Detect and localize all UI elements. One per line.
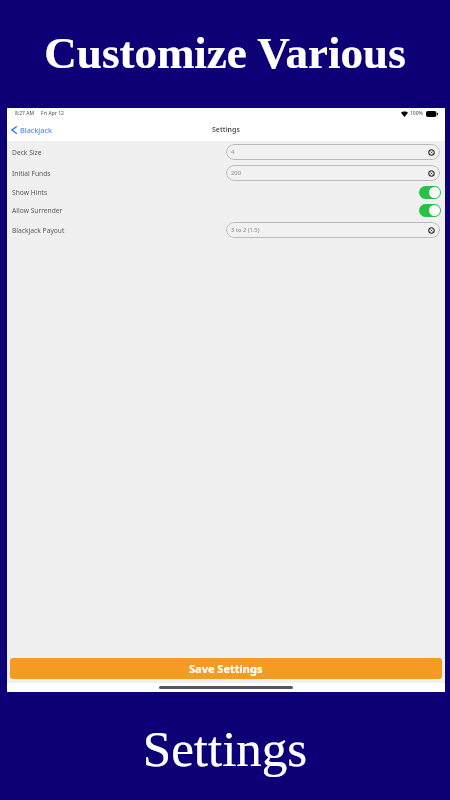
button[interactable]: Allow Surrender xyxy=(419,204,441,217)
staticText: Allow Surrender xyxy=(12,206,63,215)
button[interactable]: Allow Surrender xyxy=(7,204,445,217)
staticText: Fri Apr 12 xyxy=(41,110,64,117)
button[interactable]: Blackjack xyxy=(9,122,54,138)
staticText: 200 xyxy=(231,169,241,177)
staticText: Blackjack xyxy=(20,125,52,135)
staticText: 4 xyxy=(231,148,235,156)
staticText: Save Settings xyxy=(189,661,263,676)
button[interactable]: Clear xyxy=(428,149,435,156)
staticText: 8:27 AM xyxy=(15,110,35,117)
button[interactable]: Clear xyxy=(428,170,435,177)
button[interactable]: Save Settings xyxy=(10,658,442,679)
button[interactable]: Show Hints xyxy=(7,186,445,199)
button[interactable]: Blackjack Payout xyxy=(7,222,445,238)
button[interactable]: Show Hints xyxy=(419,186,441,199)
button[interactable]: Initial Funds xyxy=(7,165,445,181)
button[interactable]: Deck Size xyxy=(7,144,445,160)
staticText: Settings xyxy=(0,721,450,777)
staticText: Settings xyxy=(212,125,240,135)
staticText: Customize Various xyxy=(0,28,450,78)
staticText: Show Hints xyxy=(12,188,48,197)
staticText: 100% xyxy=(410,110,423,117)
staticText: Deck Size xyxy=(12,148,42,157)
staticText: Initial Funds xyxy=(12,169,51,178)
staticText: Blackjack Payout xyxy=(12,226,65,235)
button[interactable]: Clear xyxy=(428,227,435,234)
staticText: 3 to 2 (1.5) xyxy=(231,226,260,234)
